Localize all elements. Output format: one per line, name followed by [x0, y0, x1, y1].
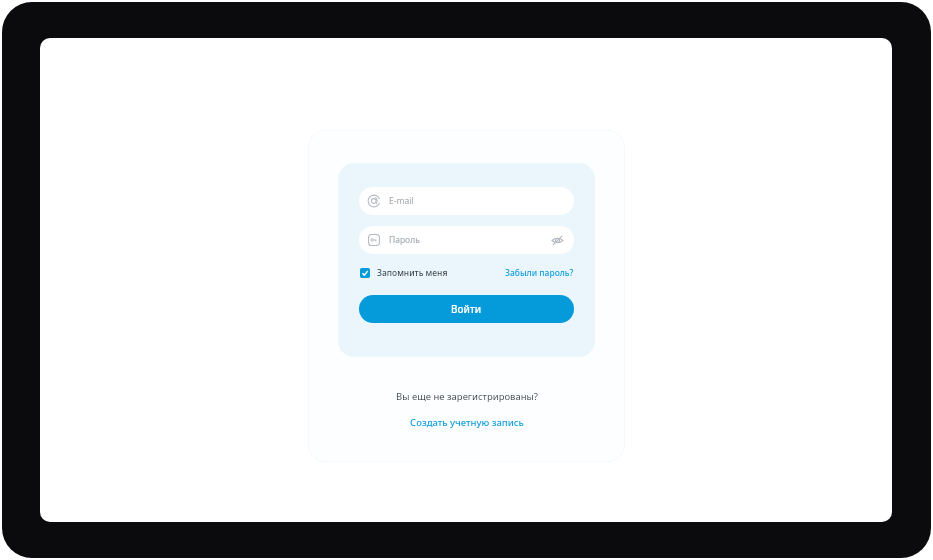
other: Пароль [367, 233, 381, 247]
button[interactable]: Создать учетную запись [410, 416, 524, 429]
button[interactable]: Показать пароль [551, 234, 564, 247]
button[interactable]: Войти [359, 295, 574, 323]
button[interactable]: Забыли пароль? [505, 267, 574, 279]
staticText: Запомнить меня [377, 267, 448, 279]
staticText: Вы еще не зарегистрированы? [396, 390, 538, 403]
staticText: Войти [451, 302, 482, 316]
other: E-mail [367, 194, 381, 208]
staticText: Пароль [389, 234, 420, 246]
staticText: Забыли пароль? [505, 267, 574, 279]
button[interactable]: Пароль [359, 226, 574, 254]
button[interactable]: Запомнить меня [360, 267, 448, 279]
staticText: Создать учетную запись [410, 416, 524, 429]
staticText: E-mail [389, 195, 414, 207]
other: Запомнить меня [360, 268, 370, 278]
button[interactable]: E-mail [359, 187, 574, 215]
